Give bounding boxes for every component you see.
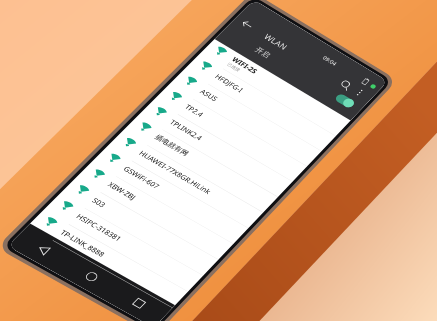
button[interactable]: WLAN settings on phone: [0, 0, 437, 321]
